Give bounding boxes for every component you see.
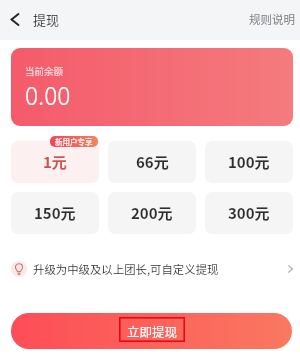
staticText: 300元 (228, 202, 270, 224)
staticText: 立即提现 (127, 322, 178, 340)
other: More (284, 263, 296, 275)
button[interactable]: 规则说明 (239, 0, 300, 40)
staticText: 200元 (131, 202, 173, 224)
button[interactable]: 立即提现 (11, 313, 292, 349)
staticText: 当前余额 (25, 64, 64, 78)
staticText: 新用户专享 (55, 136, 93, 147)
staticText: 1元 (43, 151, 67, 173)
button[interactable]: 升级为中级及以上团长,可自定义提现 (11, 260, 296, 278)
staticText: 100元 (228, 151, 270, 173)
staticText: 150元 (34, 202, 76, 224)
staticText: 66元 (136, 151, 169, 173)
staticText: 升级为中级及以上团长,可自定义提现 (33, 261, 219, 278)
staticText: 0.00 (25, 77, 71, 112)
button[interactable]: 150元 (11, 192, 99, 234)
staticText: 规则说明 (249, 11, 295, 28)
button[interactable]: 66元 (108, 141, 196, 183)
button[interactable]: 300元 (205, 192, 293, 234)
button[interactable]: Back (0, 0, 29, 40)
staticText: 提现 (33, 10, 60, 29)
button[interactable]: 200元 (108, 192, 196, 234)
button[interactable]: 100元 (205, 141, 293, 183)
button[interactable]: 1元 (11, 141, 99, 183)
